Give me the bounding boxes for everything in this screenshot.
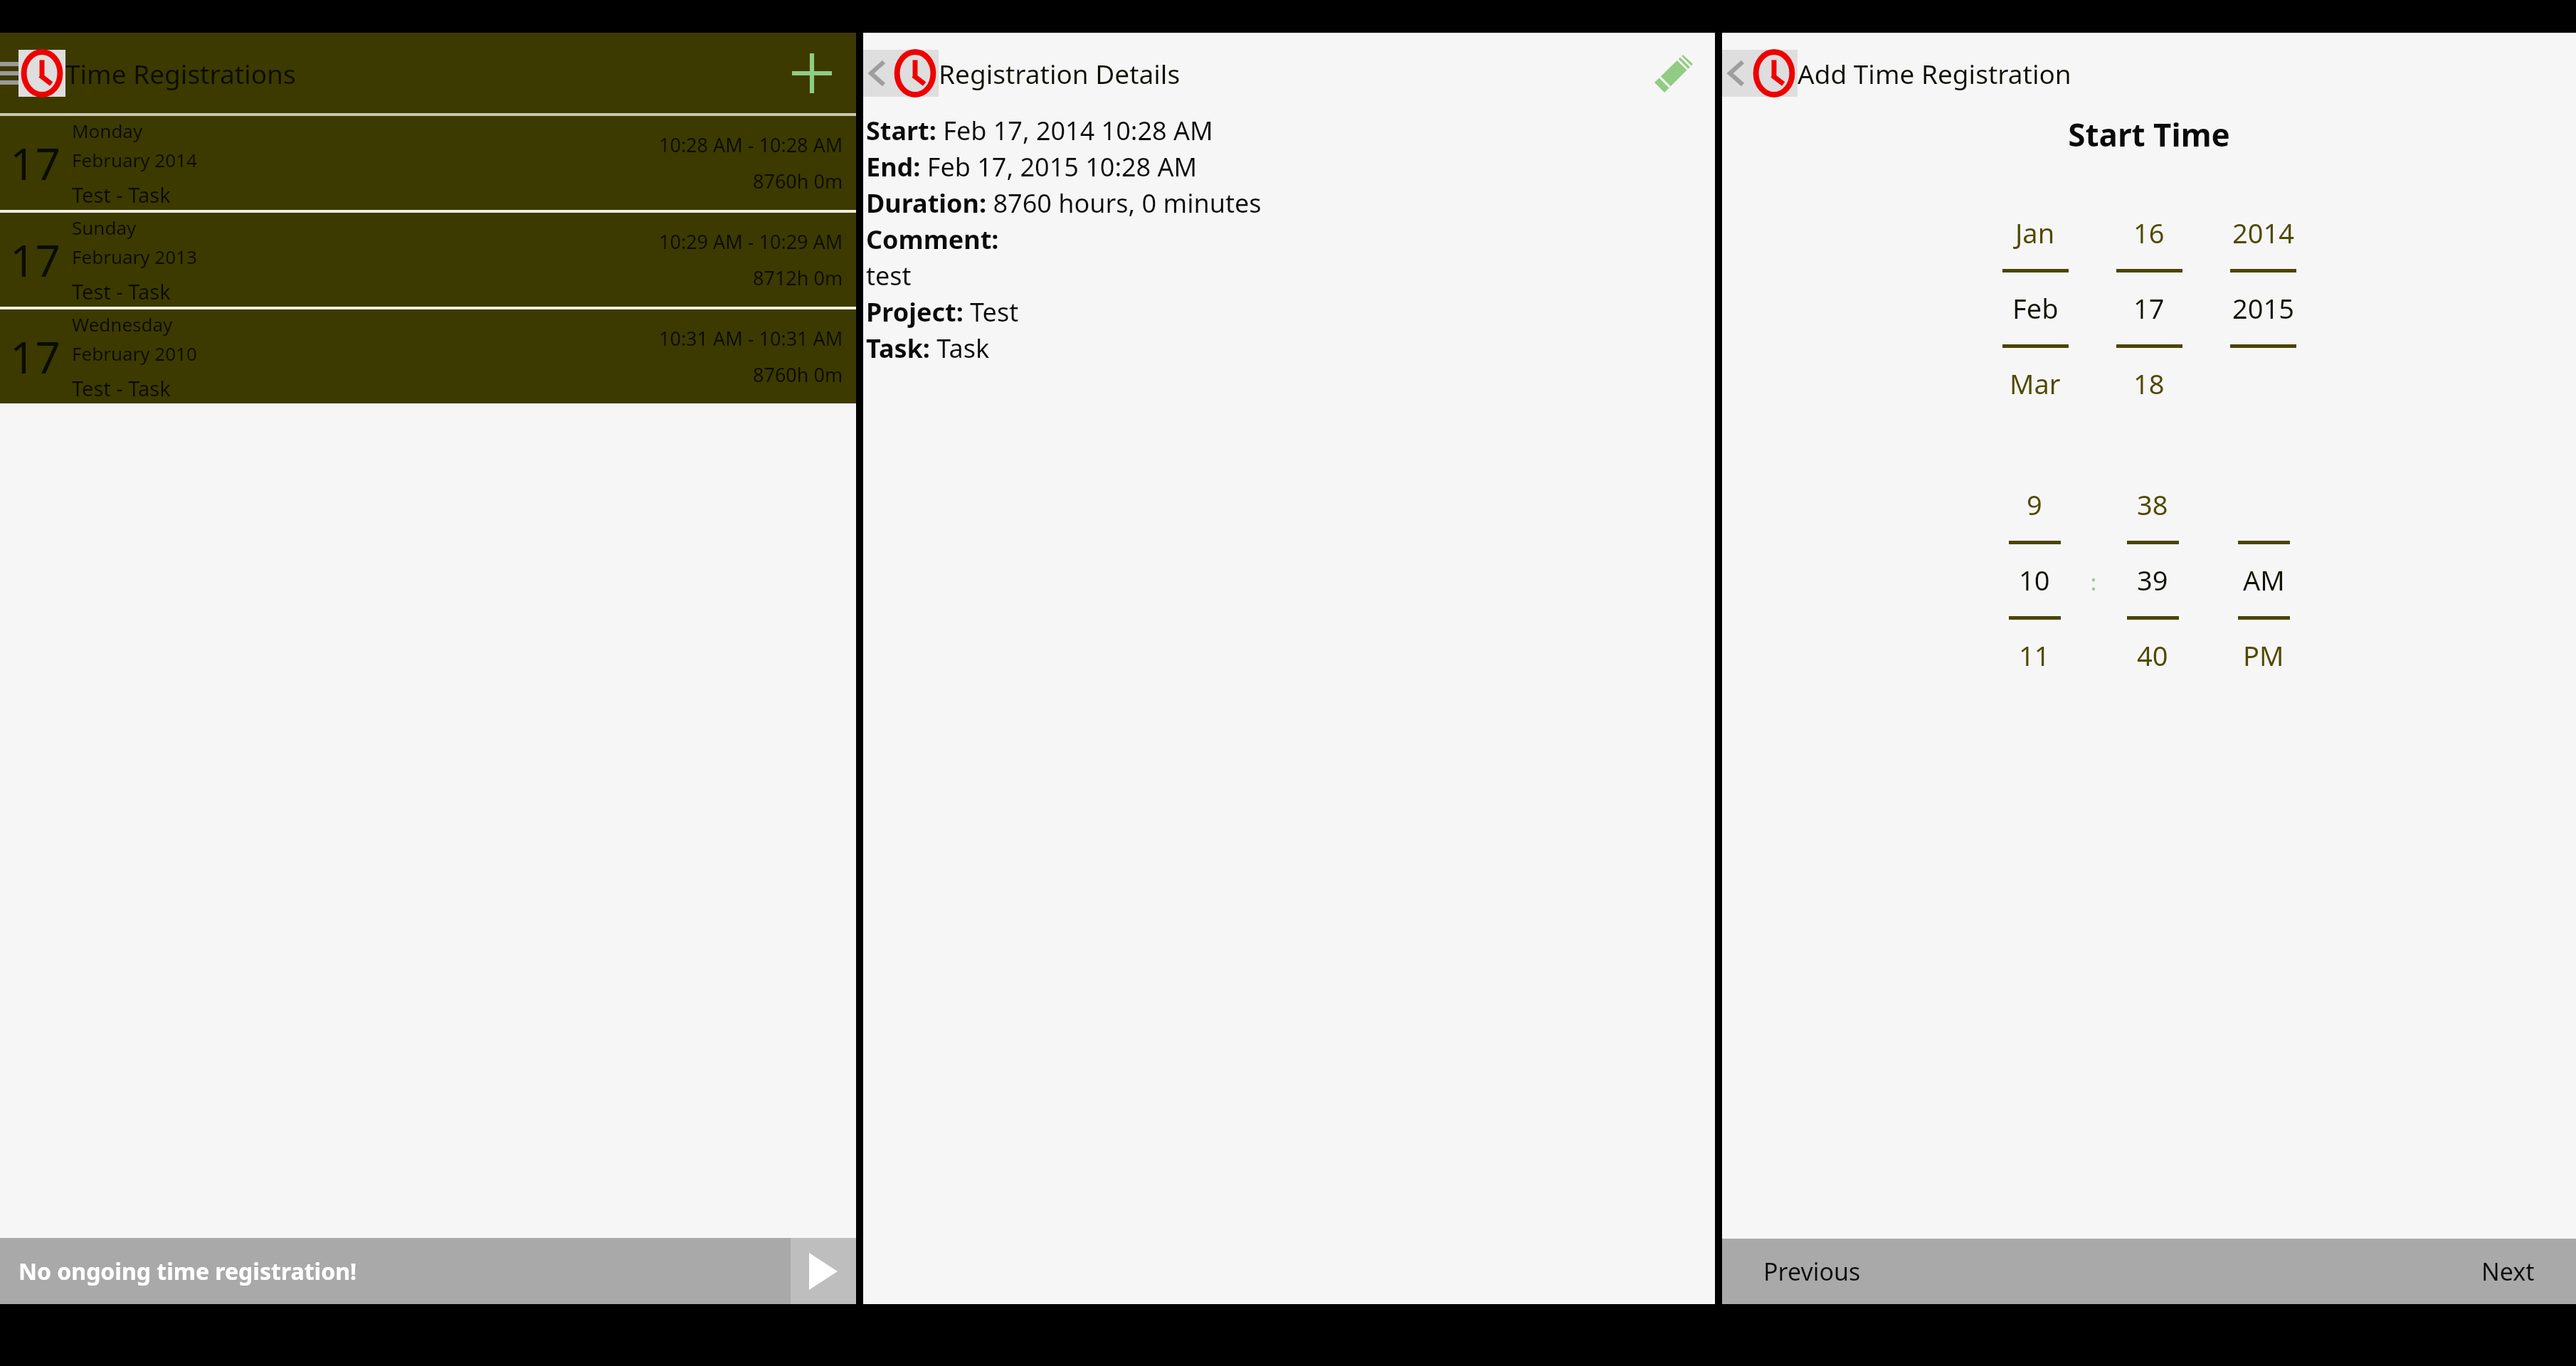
staticText: Previous (1763, 1255, 1861, 1288)
staticText: Wednesday (72, 312, 173, 337)
button[interactable]: Feb (1982, 275, 2089, 341)
staticText: Test - Task (72, 181, 171, 208)
staticText: End: Feb 17, 2015 10:28 AM (866, 149, 1198, 184)
staticText: 18 (2133, 365, 2165, 402)
staticText: 2015 (2232, 290, 2294, 327)
staticText: AM (2243, 561, 2285, 598)
staticText: 10 (2019, 561, 2050, 598)
staticText: Feb (2012, 290, 2059, 327)
button[interactable]: Open navigation menu (0, 48, 24, 98)
staticText: 10:29 AM - 10:29 AM (659, 228, 843, 255)
button[interactable]: Jan (1982, 200, 2089, 265)
staticText: 2014 (2232, 214, 2294, 251)
button[interactable]: No ongoing time registration! (0, 1238, 791, 1304)
staticText: 8760h 0m (753, 361, 843, 388)
button[interactable]: 2015 (2210, 275, 2316, 341)
staticText: 39 (2137, 561, 2168, 598)
staticText: 16 (2133, 214, 2165, 251)
staticText: Registration Details (939, 55, 1181, 91)
staticText: Duration: 8760 hours, 0 minutes (866, 186, 1262, 221)
staticText: 9 (2027, 486, 2042, 523)
staticText: Comment: (866, 222, 1005, 257)
button[interactable]: 18 (2096, 351, 2202, 416)
staticText: 10:28 AM - 10:28 AM (659, 132, 843, 158)
staticText: Next (2481, 1255, 2535, 1288)
button[interactable]: 2014 (2210, 200, 2316, 265)
staticText: February 2010 (72, 341, 197, 366)
staticText: February 2013 (72, 244, 197, 269)
button[interactable]: 10 (1992, 547, 2076, 613)
button[interactable]: AM (2222, 547, 2306, 613)
button[interactable]: 40 (2111, 623, 2195, 688)
button[interactable]: Back (1722, 50, 1751, 97)
button[interactable]: Edit (1645, 45, 1702, 102)
staticText: Sunday (72, 215, 137, 240)
staticText: Add Time Registration (1798, 55, 2071, 91)
staticText: 17 (2133, 290, 2165, 327)
staticText: Jan (2015, 214, 2055, 251)
staticText: 17 (10, 230, 60, 290)
button[interactable]: 17 (0, 213, 856, 307)
staticText: PM (2243, 637, 2284, 674)
staticText: Task: Task (866, 331, 990, 366)
staticText: 8712h 0m (753, 265, 843, 291)
staticText: Time Registrations (65, 55, 296, 91)
button[interactable]: 17 (0, 309, 856, 403)
button[interactable]: Previous (1722, 1239, 2149, 1304)
button[interactable]: 38 (2111, 472, 2195, 537)
button[interactable]: 17 (0, 116, 856, 210)
button[interactable]: 17 (2096, 275, 2202, 341)
button[interactable]: 39 (2111, 547, 2195, 613)
staticText: : (2091, 568, 2097, 597)
button[interactable]: PM (2222, 623, 2306, 688)
staticText: Start Time (1722, 113, 2576, 156)
staticText: Mar (2010, 365, 2061, 402)
staticText: 17 (10, 133, 60, 193)
button[interactable]: 9 (1992, 472, 2076, 537)
staticText: 10:31 AM - 10:31 AM (659, 325, 843, 351)
staticText: Monday (72, 118, 143, 143)
staticText: Test - Task (72, 277, 171, 305)
staticText: Project: Test (866, 295, 1019, 329)
staticText: Start: Feb 17, 2014 10:28 AM (866, 113, 1213, 148)
staticText: 17 (10, 327, 60, 386)
button[interactable]: Mar (1982, 351, 2089, 416)
staticText: 38 (2137, 486, 2168, 523)
staticText: February 2014 (72, 147, 197, 172)
button[interactable]: Add time registration (782, 43, 842, 103)
button[interactable]: Back (863, 50, 892, 97)
staticText: 40 (2137, 637, 2168, 674)
staticText: 11 (2019, 637, 2050, 674)
staticText: Test - Task (72, 374, 171, 402)
staticText: No ongoing time registration! (19, 1256, 357, 1287)
staticText: 8760h 0m (753, 168, 843, 194)
staticText: test (866, 258, 912, 293)
button[interactable]: Start registration (791, 1238, 856, 1304)
button[interactable]: Next (2149, 1239, 2576, 1304)
button[interactable]: 11 (1992, 623, 2076, 688)
button[interactable]: 16 (2096, 200, 2202, 265)
